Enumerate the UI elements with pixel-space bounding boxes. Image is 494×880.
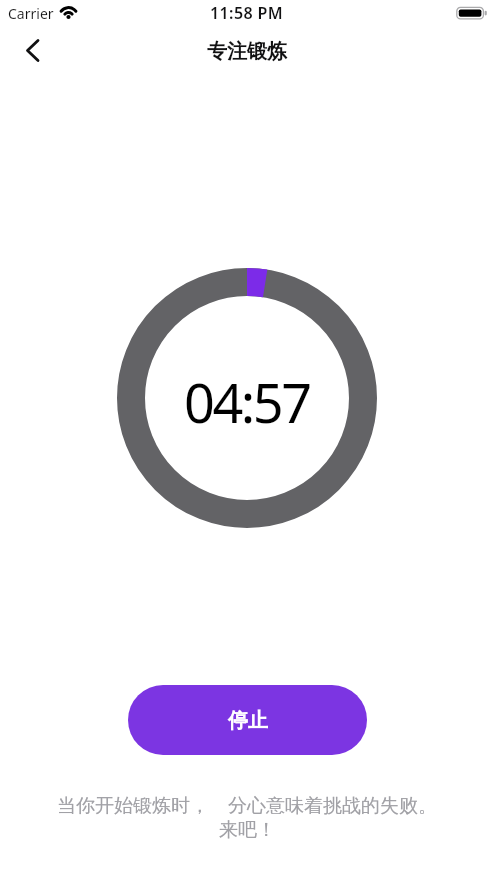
- button[interactable]: [14, 31, 54, 71]
- staticText: 当你开始锻炼时， 分心意味着挑战的失败。: [57, 792, 437, 818]
- staticText: Carrier: [8, 4, 54, 23]
- staticText: 来吧！: [219, 818, 276, 842]
- button[interactable]: 停止: [128, 685, 367, 755]
- staticText: 11:58 PM: [210, 2, 284, 24]
- staticText: 停止: [228, 708, 268, 733]
- staticText: 04:57: [184, 365, 310, 439]
- staticText: 专注锻炼: [207, 39, 287, 64]
